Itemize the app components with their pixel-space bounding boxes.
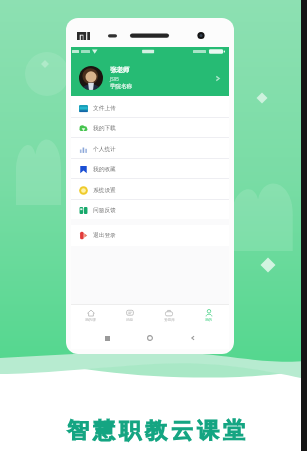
staticText: 问题反馈 — [93, 207, 116, 214]
staticText: 我的下载 — [93, 125, 116, 132]
staticText: 我的收藏 — [93, 166, 116, 173]
staticText: 消息 — [126, 318, 134, 323]
button[interactable]: Back — [186, 331, 200, 345]
button[interactable]: 消息 — [110, 305, 149, 327]
staticText: 智慧职教云课堂 — [65, 417, 247, 445]
button[interactable]: 资源库 — [149, 305, 189, 327]
button[interactable]: 我的 — [189, 305, 229, 327]
button[interactable]: 我的课 — [71, 305, 110, 327]
button[interactable]: 张老师 — [71, 59, 229, 97]
staticText: 退出登录 — [93, 232, 116, 239]
button[interactable]: 文件上传 — [71, 98, 229, 118]
staticText: 个人统计 — [93, 146, 116, 153]
button[interactable]: 个人统计 — [71, 139, 229, 159]
staticText: 系统设置 — [93, 187, 116, 194]
staticText: 我的 — [205, 318, 213, 323]
button[interactable]: 我的收藏 — [71, 159, 229, 179]
staticText: 我的课 — [85, 318, 96, 323]
button[interactable]: Home — [143, 331, 157, 345]
other: Profile details — [213, 74, 222, 83]
staticText: 文件上传 — [93, 105, 116, 112]
button[interactable]: 系统设置 — [71, 180, 229, 200]
button[interactable]: 我的下载 — [71, 118, 229, 138]
staticText: 学院名称 — [110, 83, 132, 90]
staticText: 张老师 — [110, 66, 130, 74]
staticText: JS95 — [110, 76, 119, 82]
button[interactable]: 退出登录 — [71, 225, 229, 245]
staticText: 资源库 — [164, 318, 175, 323]
button[interactable]: 问题反馈 — [71, 200, 229, 220]
button[interactable]: Recents — [100, 331, 114, 345]
